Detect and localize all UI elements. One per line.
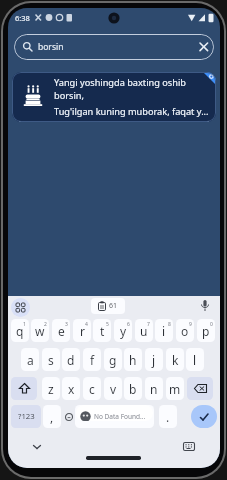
staticText: i [162,323,166,339]
staticText: Yangi yoshingda baxting oshib [54,76,186,89]
staticText: y [120,323,127,339]
staticText: f [90,352,95,368]
staticText: c [89,381,95,397]
button[interactable]: y [114,319,132,342]
staticText: r [80,323,85,339]
staticText: v [110,381,117,397]
button[interactable]: z [42,377,60,400]
staticText: a [27,352,34,368]
button[interactable]: o [176,319,194,342]
button[interactable]: k [166,348,184,371]
button[interactable] [11,377,37,400]
staticText: l [193,352,197,368]
staticText: n [150,381,158,397]
button[interactable] [183,442,195,451]
staticText: e [58,323,65,339]
staticText: . [166,409,170,425]
button[interactable]: e [52,319,70,342]
button[interactable]: m [166,377,184,400]
staticText: x [68,381,75,397]
button[interactable]: g [104,348,122,371]
button[interactable]: u [135,319,153,342]
staticText: 5 [106,321,109,328]
staticText: h [129,352,137,368]
staticText: 1 [23,321,26,328]
button[interactable] [201,300,209,313]
staticText: p [202,323,210,339]
button[interactable]: w [31,319,49,342]
button[interactable]: l [186,348,204,371]
button[interactable] [191,405,217,428]
staticText: 3 [65,321,68,328]
staticText: , [50,409,54,425]
button[interactable]: f [83,348,101,371]
staticText: s [48,352,54,368]
button[interactable]: n [145,377,163,400]
staticText: 0 [210,321,213,328]
staticText: 2 [44,321,47,328]
staticText: No Data Found... [94,412,146,421]
staticText: 4 [85,321,88,328]
button[interactable] [28,439,46,455]
button[interactable]: q [11,319,29,342]
staticText: 9 [189,321,192,328]
staticText: k [172,352,179,368]
button[interactable]: r [73,319,91,342]
staticText: borsin [38,41,64,53]
staticText: 6 [127,321,130,328]
staticText: m [169,381,181,397]
button[interactable] [62,407,75,426]
staticText: b [129,381,137,397]
staticText: o [181,323,189,339]
button[interactable] [187,377,213,400]
button[interactable]: ?123 [11,405,41,428]
staticText: 6:38 [15,13,30,23]
button[interactable]: , [43,405,61,428]
staticText: t [100,323,105,339]
button[interactable]: 61 [91,298,125,314]
button[interactable] [11,298,30,317]
staticText: d [67,352,75,368]
staticText: q [16,323,24,339]
staticText: z [48,381,54,397]
button[interactable]: v [104,377,122,400]
button[interactable]: t [93,319,111,342]
staticText: j [152,352,156,368]
button[interactable]: Yangi yoshingda baxting oshib [12,72,216,122]
staticText: g [109,352,117,368]
button[interactable]: x [62,377,80,400]
staticText: 61 [109,301,118,311]
button[interactable]: borsin [14,34,214,60]
button[interactable] [75,405,154,428]
button[interactable]: a [21,348,39,371]
button[interactable]: d [62,348,80,371]
button[interactable]: p [197,319,215,342]
button[interactable]: s [42,348,60,371]
button[interactable]: b [124,377,142,400]
staticText: ?123 [18,411,35,422]
button[interactable]: . [159,405,177,428]
staticText: w [35,323,45,339]
button[interactable]: i [155,319,173,342]
button[interactable]: h [124,348,142,371]
staticText: 7 [147,321,150,328]
staticText: 8 [168,321,171,328]
staticText: borsin, [54,89,84,102]
button[interactable]: c [83,377,101,400]
button[interactable]: j [145,348,163,371]
staticText: u [140,323,148,339]
staticText: Tug'ilgan kuning muborak, faqat y... [54,105,209,118]
